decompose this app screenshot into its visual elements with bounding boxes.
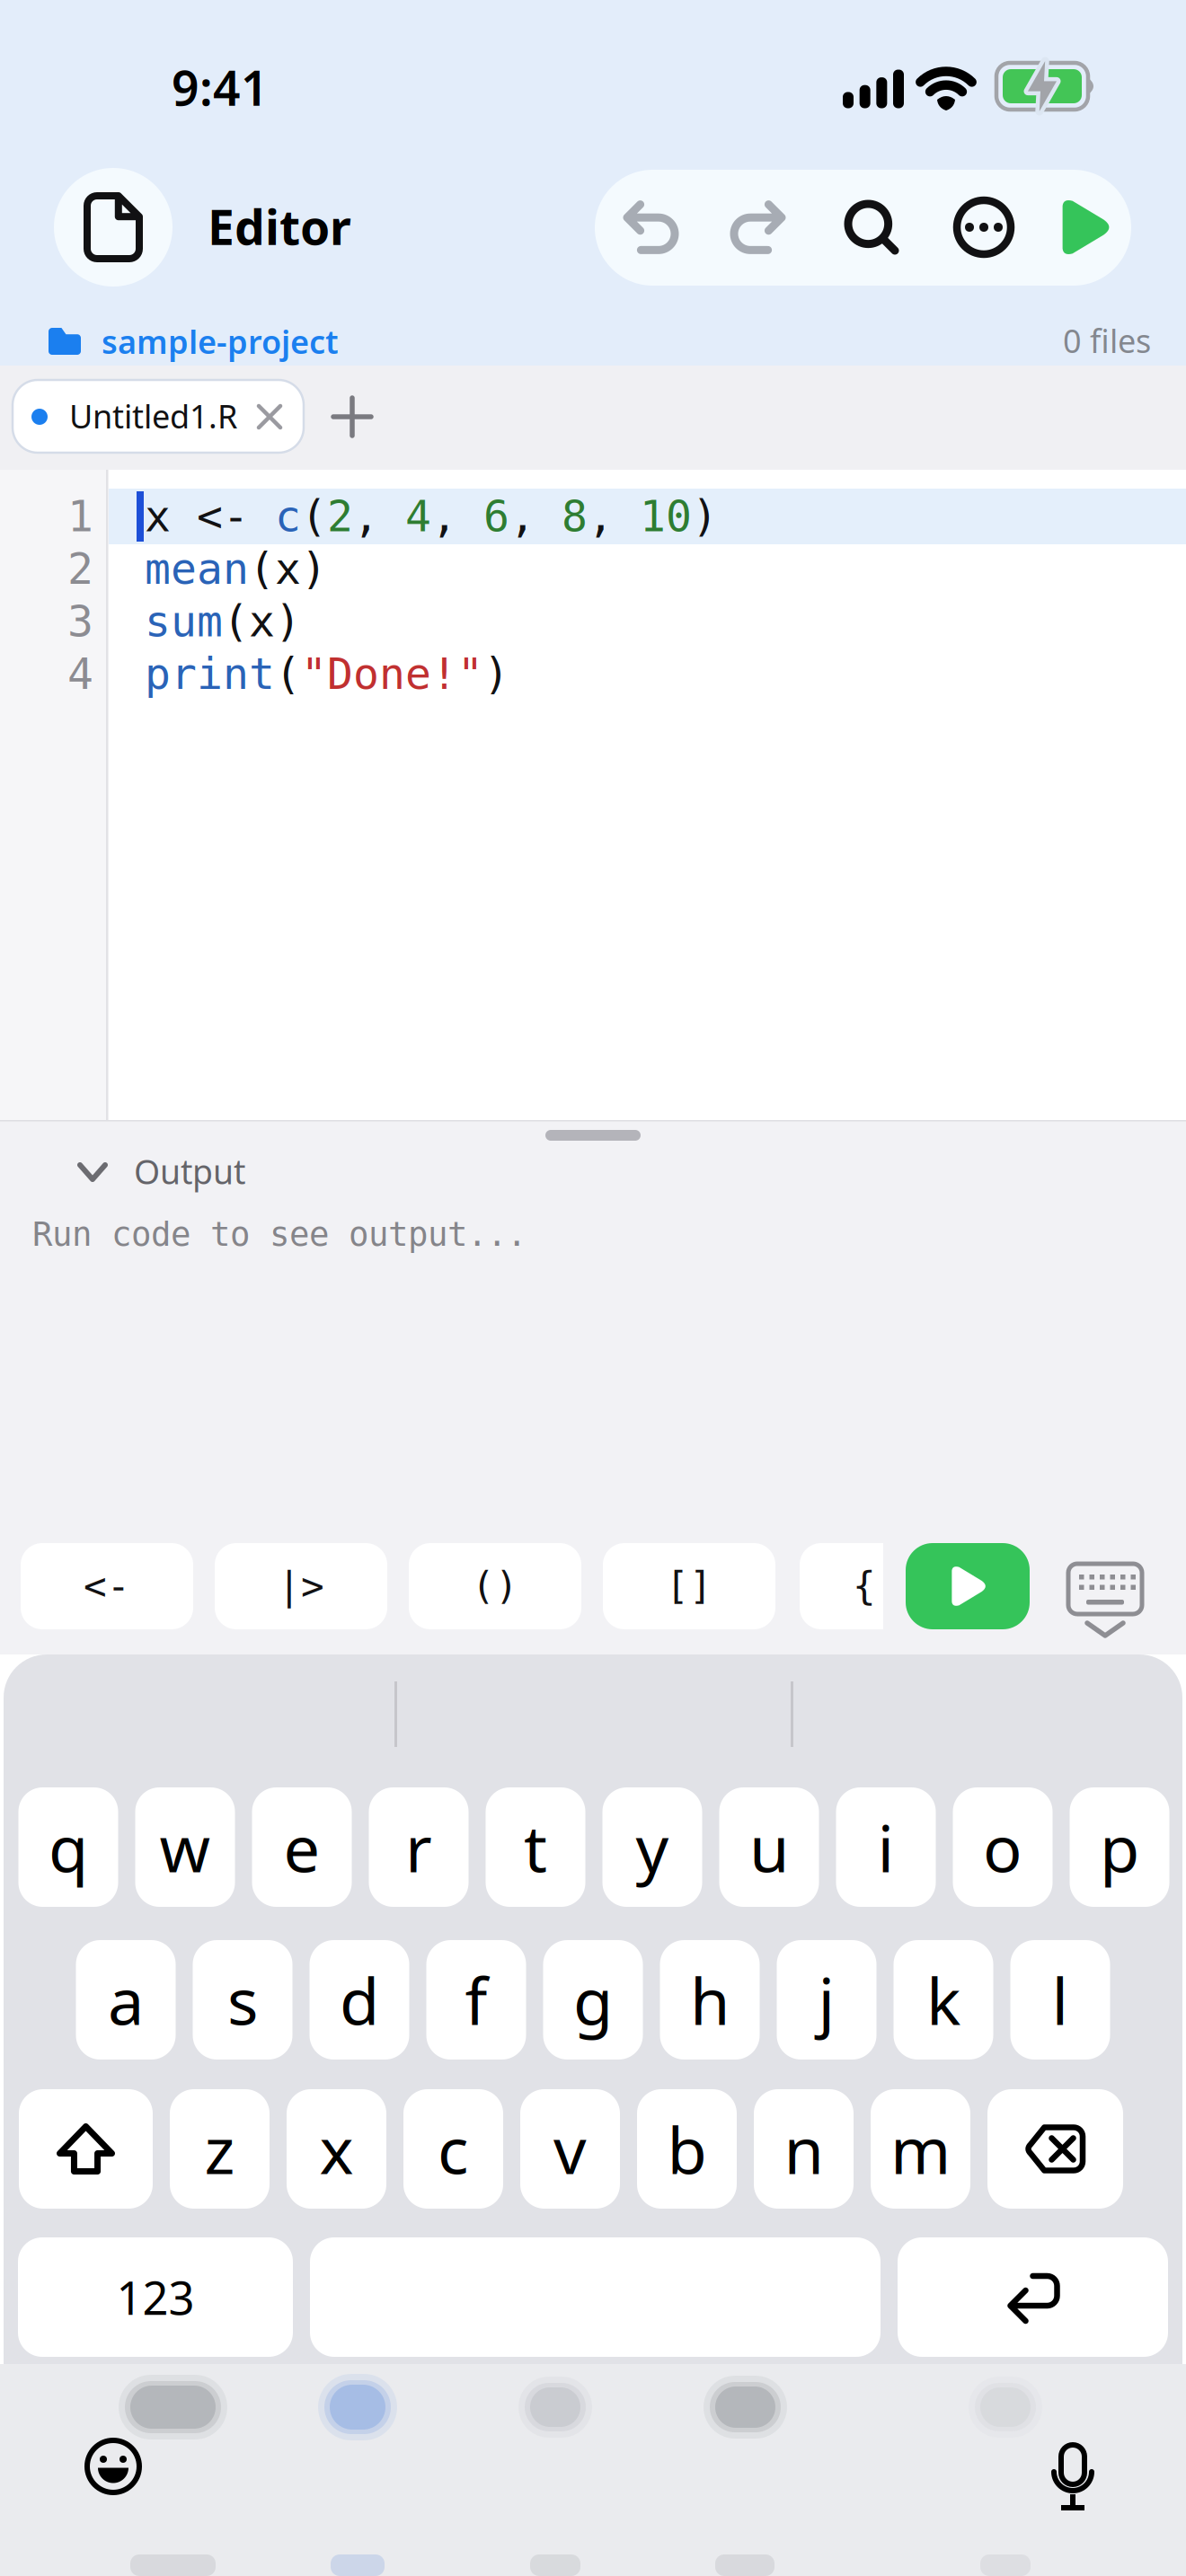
staticText: v [553, 2106, 587, 2192]
button[interactable]: Untitled1.R [13, 380, 304, 453]
button[interactable]: p [1070, 1787, 1169, 1907]
button[interactable]: <- [21, 1543, 193, 1629]
button[interactable]: New file [316, 381, 388, 453]
staticText: w [159, 1804, 211, 1890]
button[interactable]: g [543, 1940, 643, 2060]
staticText: , [588, 492, 640, 541]
button[interactable]: t [486, 1787, 585, 1907]
staticText: mean [145, 545, 249, 594]
staticText: ) [483, 650, 509, 699]
staticText: , [353, 492, 405, 541]
button[interactable]: l [1010, 1940, 1110, 2060]
button[interactable]: x [287, 2089, 386, 2209]
button[interactable]: Delete [987, 2089, 1123, 2209]
button[interactable]: () [409, 1543, 581, 1629]
button[interactable]: Dictation [1051, 2431, 1094, 2498]
button[interactable]: v [520, 2089, 620, 2209]
button[interactable]: sample-project [38, 322, 343, 361]
staticText: 6 [483, 492, 509, 541]
staticText: ( [275, 650, 301, 699]
button[interactable]: y [602, 1787, 702, 1907]
staticText: 1 [67, 492, 93, 541]
staticText: 9:41 [172, 55, 269, 119]
staticText: o [983, 1804, 1022, 1890]
staticText: ( [301, 492, 327, 541]
button[interactable]: e [252, 1787, 352, 1907]
button[interactable]: Files [54, 168, 173, 287]
staticText: j [818, 1957, 835, 2043]
button[interactable]: f [426, 1940, 526, 2060]
button[interactable]: w [135, 1787, 235, 1907]
staticText: g [573, 1957, 613, 2043]
staticText: x [319, 2106, 354, 2192]
button[interactable]: Space [310, 2237, 881, 2357]
staticText: 4 [405, 492, 431, 541]
staticText: Output [134, 1149, 245, 1194]
button[interactable]: c [403, 2089, 503, 2209]
button[interactable]: n [754, 2089, 854, 2209]
staticText: z [204, 2106, 235, 2192]
staticText: k [926, 1957, 960, 2043]
staticText: 2 [67, 545, 93, 594]
button[interactable]: Search [822, 170, 921, 285]
staticText: Run code to see output... [32, 1215, 527, 1253]
staticText: [] [666, 1564, 712, 1608]
staticText: 123 [116, 2267, 195, 2327]
staticText: <- [197, 492, 249, 541]
button[interactable]: Output [0, 1120, 270, 1192]
button[interactable]: Redo [710, 170, 809, 285]
button[interactable]: s [193, 1940, 292, 2060]
staticText: Untitled1.R [69, 394, 237, 437]
button[interactable]: u [719, 1787, 819, 1907]
staticText: u [749, 1804, 789, 1890]
button[interactable]: h [660, 1940, 760, 2060]
staticText: 10 [640, 492, 692, 541]
button[interactable]: a [76, 1940, 176, 2060]
staticText: Editor [208, 195, 351, 258]
button[interactable]: r [369, 1787, 469, 1907]
button[interactable]: |> [215, 1543, 387, 1629]
staticText: f [465, 1957, 487, 2043]
staticText: l [1052, 1957, 1069, 2043]
button[interactable]: Run code [906, 1543, 1030, 1629]
staticText: e [283, 1804, 320, 1890]
staticText: sample-project [102, 320, 339, 363]
button[interactable]: i [836, 1787, 936, 1907]
button[interactable]: Undo [600, 170, 699, 285]
staticText: r [405, 1804, 432, 1890]
staticText: 8 [562, 492, 588, 541]
staticText: "Done!" [301, 650, 483, 699]
staticText: n [784, 2106, 823, 2192]
button[interactable]: j [777, 1940, 876, 2060]
button[interactable]: Return [898, 2237, 1168, 2357]
staticText: { [853, 1564, 876, 1608]
staticText: 0 files [1063, 319, 1151, 362]
staticText: 3 [67, 597, 93, 646]
button[interactable]: z [170, 2089, 270, 2209]
staticText: print [145, 650, 275, 699]
button[interactable]: q [18, 1787, 118, 1907]
staticText: m [890, 2106, 951, 2192]
staticText: <- [84, 1564, 130, 1608]
staticText: |> [278, 1564, 324, 1608]
button[interactable]: o [953, 1787, 1053, 1907]
staticText: y [636, 1804, 669, 1890]
staticText: s [227, 1957, 258, 2043]
staticText: 2 [327, 492, 353, 541]
staticText: sum [145, 597, 223, 646]
button[interactable]: b [637, 2089, 737, 2209]
button[interactable]: [] [603, 1543, 775, 1629]
button[interactable]: 123 [18, 2237, 293, 2357]
button[interactable]: { [800, 1543, 883, 1629]
button[interactable]: More [934, 170, 1033, 285]
button[interactable]: Run [1040, 170, 1129, 285]
button[interactable]: k [894, 1940, 993, 2060]
button[interactable]: m [871, 2089, 970, 2209]
button[interactable]: Shift [19, 2089, 153, 2209]
button[interactable]: d [310, 1940, 409, 2060]
staticText: t [524, 1804, 547, 1890]
staticText: a [108, 1957, 144, 2043]
button[interactable]: Emoji [84, 2438, 142, 2495]
button[interactable]: Dismiss keyboard [1068, 1549, 1142, 1621]
